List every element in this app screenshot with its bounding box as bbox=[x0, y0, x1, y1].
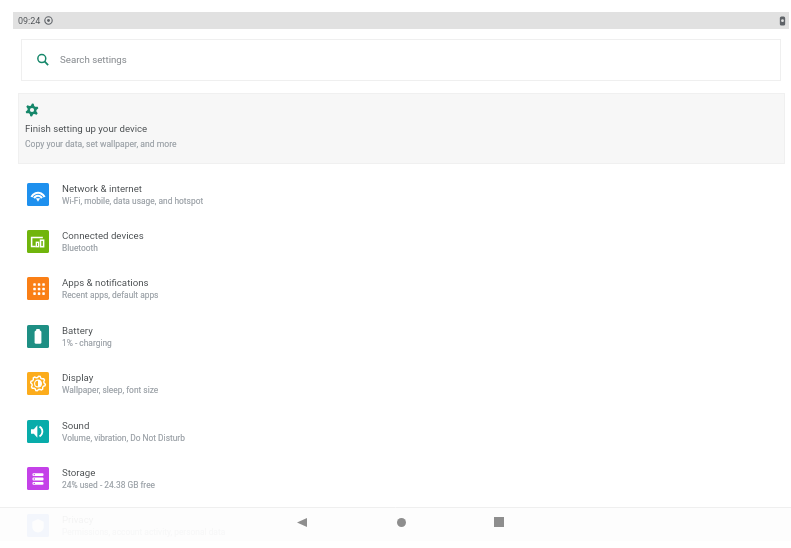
staticText: Network & internet bbox=[62, 183, 142, 194]
staticText: Finish setting up your device bbox=[25, 123, 148, 134]
staticText: Sound bbox=[62, 420, 90, 431]
button[interactable]: Search settings bbox=[21, 39, 781, 81]
staticText: Wi-Fi, mobile, data usage, and hotspot bbox=[62, 196, 204, 206]
staticText: 09:24 bbox=[18, 16, 41, 27]
staticText: Connected devices bbox=[62, 230, 144, 241]
staticText: Wallpaper, sleep, font size bbox=[62, 385, 159, 395]
staticText: Search settings bbox=[60, 54, 127, 65]
button[interactable]: Back bbox=[282, 505, 322, 539]
staticText: 1% - charging bbox=[62, 338, 112, 348]
button[interactable]: Connected devices bbox=[0, 218, 791, 265]
button[interactable]: Sound bbox=[0, 408, 791, 455]
button[interactable]: Battery bbox=[0, 313, 791, 360]
button[interactable]: Privacy bbox=[0, 502, 791, 548]
staticText: Volume, vibration, Do Not Disturb bbox=[62, 433, 185, 443]
button[interactable]: Home bbox=[381, 505, 421, 539]
button[interactable]: Recent apps bbox=[479, 505, 519, 539]
button[interactable]: Network & internet bbox=[0, 171, 791, 218]
staticText: Display bbox=[62, 372, 94, 383]
button[interactable]: Storage bbox=[0, 455, 791, 502]
staticText: Recent apps, default apps bbox=[62, 290, 159, 300]
staticText: Storage bbox=[62, 467, 96, 478]
staticText: Battery bbox=[62, 325, 93, 336]
staticText: Bluetooth bbox=[62, 243, 98, 253]
button[interactable]: Display bbox=[0, 360, 791, 407]
staticText: 24% used - 24.38 GB free bbox=[62, 480, 156, 490]
button[interactable]: Finish setting up your device bbox=[18, 93, 785, 164]
staticText: Apps & notifications bbox=[62, 277, 149, 288]
staticText: Copy your data, set wallpaper, and more bbox=[25, 139, 177, 149]
button[interactable]: Apps & notifications bbox=[0, 265, 791, 312]
